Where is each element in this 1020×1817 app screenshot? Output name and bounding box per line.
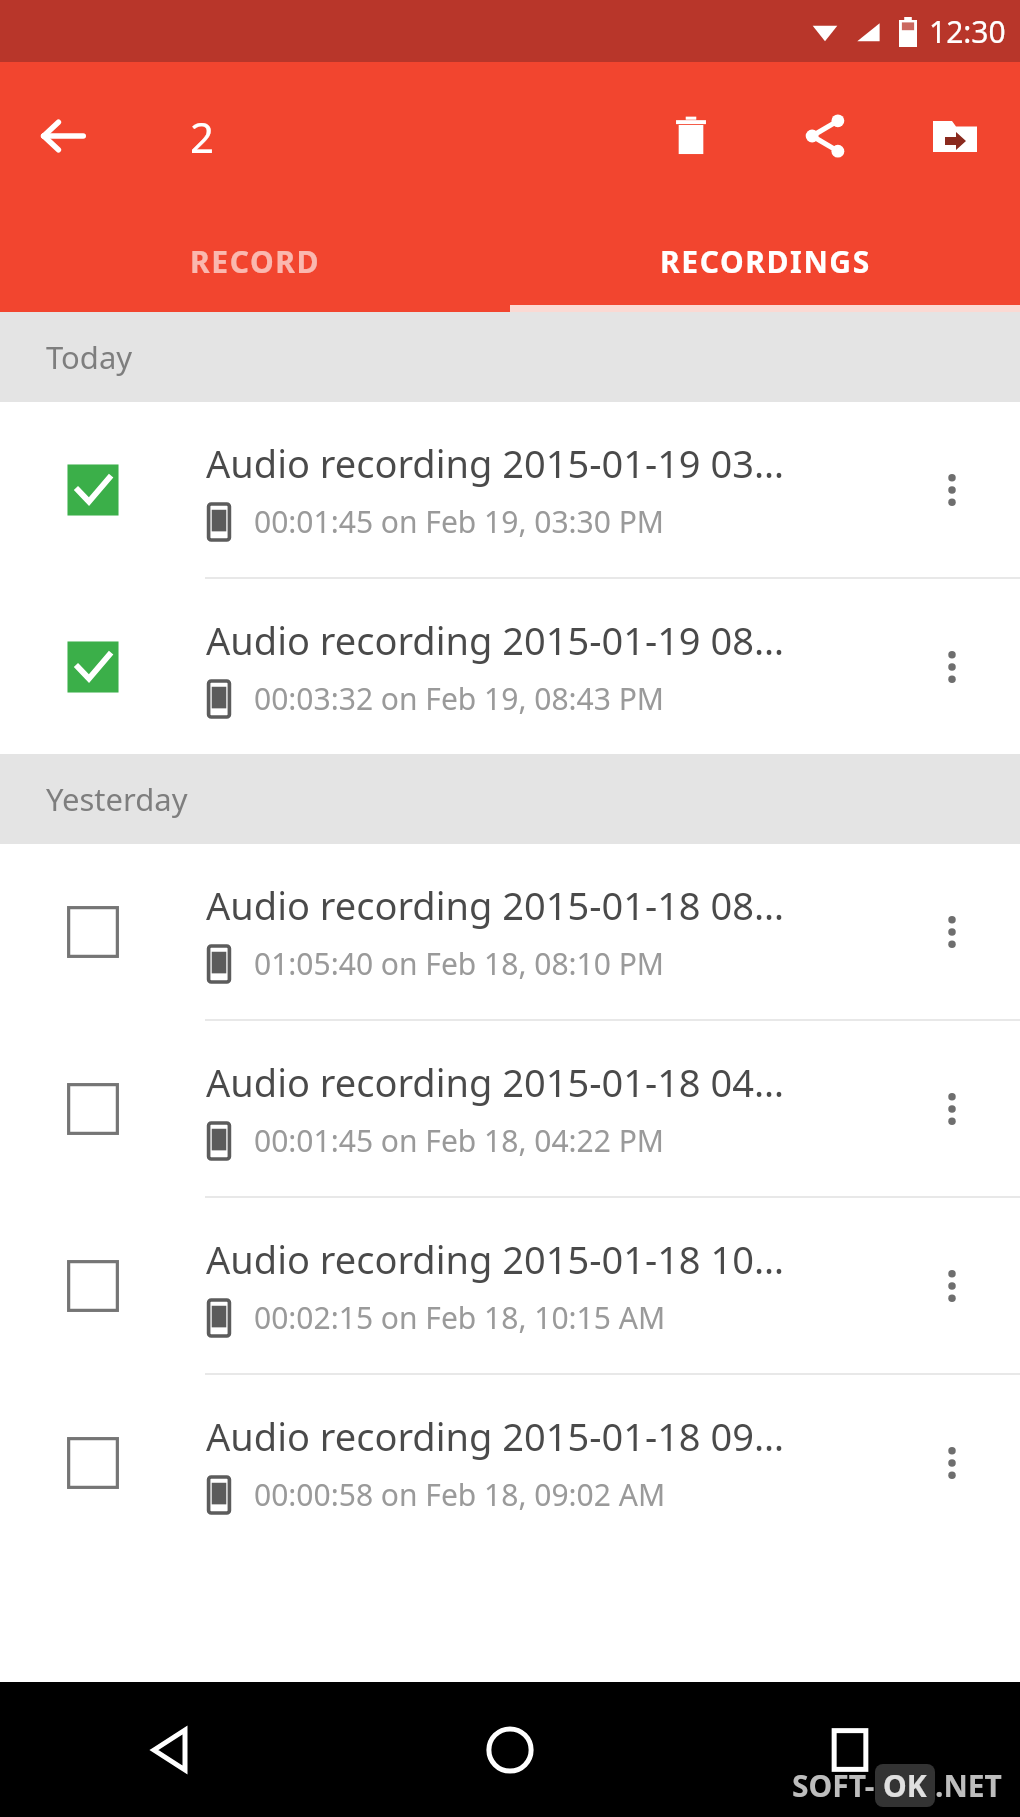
staticText: 00:01:45 on Feb 18, 04:22 PM xyxy=(254,1120,665,1161)
button[interactable]: RECORD xyxy=(0,210,510,312)
button[interactable]: Share xyxy=(784,95,866,177)
staticText: 00:00:58 on Feb 18, 09:02 AM xyxy=(254,1474,666,1515)
button[interactable]: More options xyxy=(914,894,990,970)
staticText: Today xyxy=(46,336,133,378)
staticText: Audio recording 2015-01-18 09… xyxy=(206,1410,785,1462)
button[interactable]: Back xyxy=(0,1682,340,1817)
button[interactable]: RECORDINGS xyxy=(510,210,1020,312)
staticText: Yesterday xyxy=(46,778,188,820)
button[interactable]: Not selected xyxy=(62,901,124,963)
staticText: Audio recording 2015-01-19 03… xyxy=(206,437,785,489)
button[interactable]: Back xyxy=(24,97,102,175)
button[interactable]: Selected xyxy=(62,636,124,698)
button[interactable]: Selected xyxy=(0,402,1020,577)
staticText: Audio recording 2015-01-18 10… xyxy=(206,1233,785,1285)
button[interactable]: More options xyxy=(914,452,990,528)
button[interactable]: More options xyxy=(914,629,990,705)
button[interactable]: Selected xyxy=(62,459,124,521)
button[interactable]: Move to folder xyxy=(914,95,996,177)
staticText: 00:01:45 on Feb 19, 03:30 PM xyxy=(254,501,665,542)
staticText: SOFT- xyxy=(792,1765,875,1806)
button[interactable]: More options xyxy=(914,1248,990,1324)
button[interactable]: Not selected xyxy=(0,844,1020,1019)
staticText: 01:05:40 on Feb 18, 08:10 PM xyxy=(254,943,665,984)
button[interactable]: Not selected xyxy=(62,1255,124,1317)
button[interactable]: More options xyxy=(914,1071,990,1147)
button[interactable]: Not selected xyxy=(62,1432,124,1494)
staticText: OK xyxy=(883,1765,927,1806)
staticText: Audio recording 2015-01-18 04… xyxy=(206,1056,785,1108)
button[interactable]: Not selected xyxy=(0,1198,1020,1373)
staticText: 2 xyxy=(190,108,215,165)
staticText: 12:30 xyxy=(929,11,1006,52)
button[interactable]: Recents xyxy=(680,1682,1020,1817)
button[interactable]: More options xyxy=(914,1425,990,1501)
staticText: 00:02:15 on Feb 18, 10:15 AM xyxy=(254,1297,666,1338)
button[interactable]: Not selected xyxy=(0,1375,1020,1550)
staticText: RECORD xyxy=(190,241,321,282)
button[interactable]: Not selected xyxy=(62,1078,124,1140)
staticText: RECORDINGS xyxy=(660,241,871,282)
staticText: 00:03:32 on Feb 19, 08:43 PM xyxy=(254,678,665,719)
staticText: Audio recording 2015-01-19 08… xyxy=(206,614,785,666)
staticText: Audio recording 2015-01-18 08… xyxy=(206,879,785,931)
button[interactable]: Not selected xyxy=(0,1021,1020,1196)
button[interactable]: Home xyxy=(340,1682,680,1817)
staticText: .NET xyxy=(935,1765,1002,1806)
button[interactable]: Delete xyxy=(650,95,732,177)
button[interactable]: Selected xyxy=(0,579,1020,754)
